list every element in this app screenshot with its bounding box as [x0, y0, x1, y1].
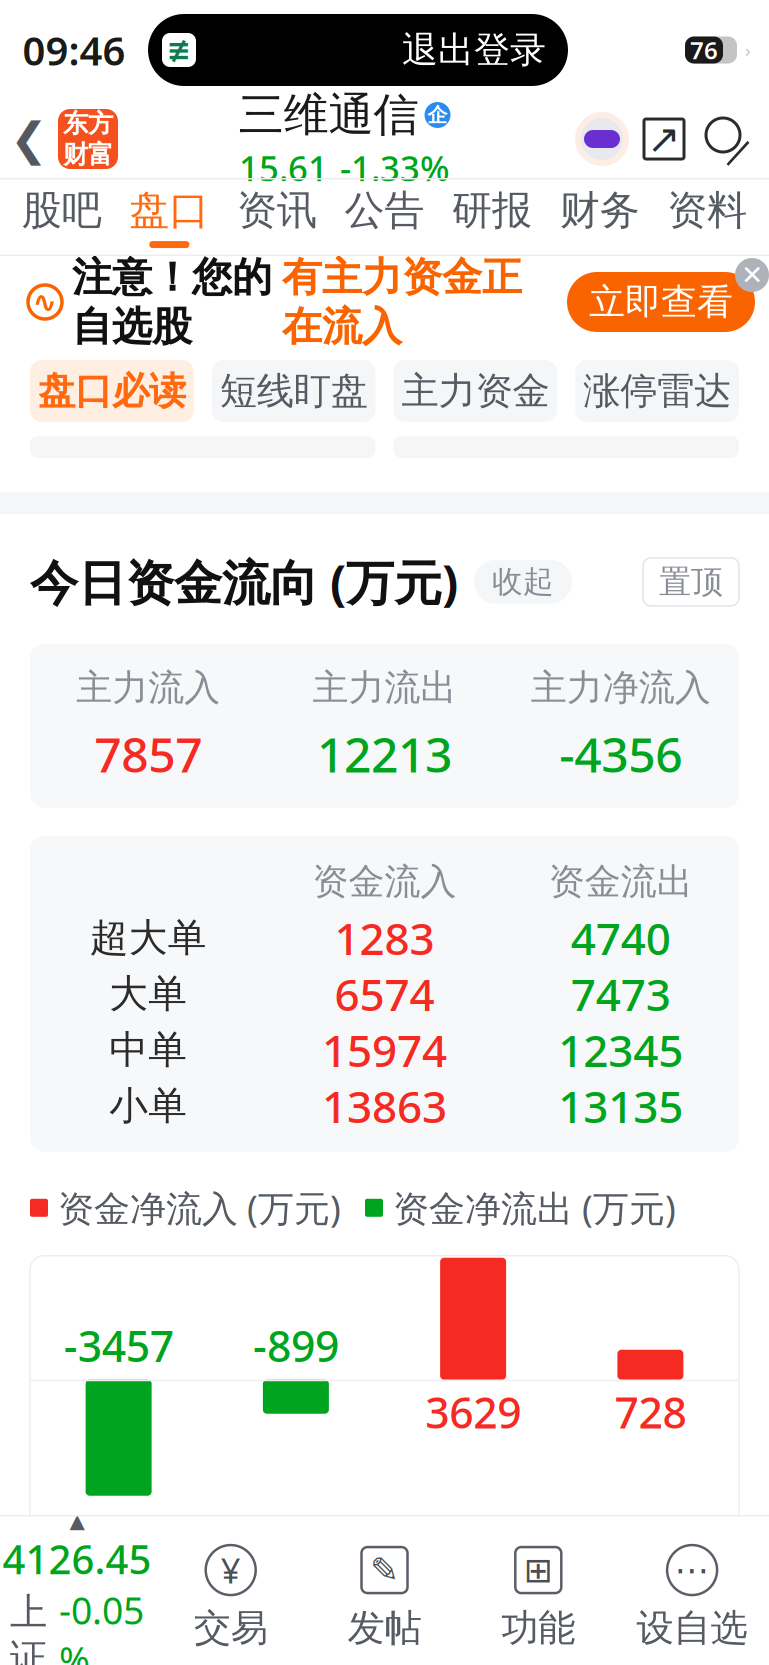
staticText: ❮ — [10, 113, 48, 165]
staticText: 今日资金流向 (万元) — [30, 550, 458, 614]
staticText: 有主力资金正在流入 — [282, 253, 522, 351]
staticText: 3629 — [425, 1384, 521, 1440]
staticText: 涨停雷达 — [583, 368, 731, 414]
button[interactable]: 资讯 — [223, 178, 331, 256]
staticText: 财富 — [63, 139, 113, 170]
staticText: 发帖 — [347, 1605, 421, 1651]
staticText: 中单 — [109, 1026, 187, 1074]
button[interactable]: 研报 — [438, 178, 546, 256]
staticText: ↗ — [647, 116, 681, 162]
staticText: 净超大 — [60, 1512, 177, 1559]
staticText: 资金流出 — [549, 860, 693, 904]
staticText: 09:46 — [22, 23, 125, 76]
button[interactable]: 搜索 — [695, 102, 759, 176]
staticText: 收起 — [492, 563, 554, 601]
staticText: 盘口必读 — [38, 368, 186, 414]
staticText: -1.33% — [340, 145, 450, 191]
staticText: ▲ — [69, 1509, 84, 1532]
staticText: 6574 — [334, 965, 434, 1023]
button[interactable]: ∿ — [0, 256, 769, 348]
staticText: -4356 — [559, 722, 682, 786]
staticText: 13135 — [558, 1077, 683, 1135]
staticText: 功能 — [501, 1605, 575, 1651]
staticText: 3629 — [425, 1229, 521, 1286]
button[interactable]: 分享 — [633, 102, 695, 176]
button[interactable]: 智能助手 — [571, 102, 633, 176]
button[interactable]: 主力资金 — [393, 360, 557, 422]
button[interactable]: ≢ — [148, 14, 568, 86]
button[interactable]: 置顶 — [643, 558, 739, 606]
staticText: 15.61 — [239, 145, 328, 191]
staticText: ⊞ — [524, 1550, 553, 1590]
staticText: 1283 — [334, 909, 434, 967]
staticText: 三维通信 — [238, 87, 418, 143]
button[interactable]: ¥ — [154, 1543, 308, 1651]
staticText: -3457 — [64, 1317, 174, 1374]
staticText: 12213 — [317, 722, 452, 786]
staticText: 4126.45 — [2, 1532, 151, 1585]
staticText: 超大单 — [90, 914, 207, 962]
staticText: 资金流入 — [312, 860, 456, 904]
staticText: 主力流出 — [312, 666, 456, 710]
button[interactable]: 关闭 — [735, 258, 769, 292]
staticText: 资讯 — [237, 186, 317, 235]
staticText: 净小单 — [592, 1512, 709, 1559]
staticText: 企 — [427, 103, 447, 127]
staticText: 728 — [614, 1384, 686, 1440]
button[interactable]: 涨停雷达 — [575, 360, 739, 422]
staticText: 7473 — [571, 965, 671, 1023]
staticText: 净大单 — [237, 1512, 354, 1559]
button[interactable]: ▲ — [0, 1509, 154, 1665]
staticText: 置顶 — [659, 562, 723, 601]
staticText: 4740 — [571, 909, 671, 967]
button[interactable]: ⋯ — [615, 1543, 769, 1651]
staticText: 13863 — [322, 1077, 447, 1135]
button[interactable]: 短线盯盘 — [212, 360, 376, 422]
staticText: 注意！您的自选股 — [72, 253, 272, 351]
staticText: 资料 — [667, 186, 747, 235]
button[interactable]: 盘口 — [116, 178, 223, 256]
button[interactable]: 收起 — [474, 560, 572, 604]
button[interactable]: 东方财富 — [58, 109, 118, 169]
staticText: 短线盯盘 — [220, 368, 368, 414]
staticText: ⋯ — [675, 1550, 710, 1590]
staticText: 退出登录 — [402, 28, 546, 72]
staticText: › — [745, 38, 751, 62]
staticText: 盘口 — [129, 186, 209, 235]
staticText: 资金净流入 (万元) — [58, 1184, 341, 1232]
staticText: ∿ — [32, 285, 57, 319]
staticText: 公告 — [344, 186, 424, 235]
button[interactable]: 资料 — [653, 178, 761, 256]
button[interactable]: ⊞ — [461, 1543, 615, 1651]
staticText: 728 — [614, 1321, 686, 1378]
staticText: 上证 — [10, 1589, 47, 1665]
staticText: 7857 — [94, 722, 202, 786]
staticText: -0.05% — [59, 1585, 144, 1665]
staticText: ≢ — [166, 33, 191, 67]
staticText: ¥ — [221, 1547, 241, 1593]
button[interactable]: 财务 — [546, 178, 653, 256]
staticText: ／ — [725, 136, 752, 168]
staticText: 股吧 — [22, 186, 102, 235]
button[interactable]: 股吧 — [8, 178, 116, 256]
staticText: ✎ — [370, 1550, 399, 1590]
staticText: 净中单 — [415, 1512, 532, 1559]
staticText: 交易 — [194, 1605, 268, 1651]
button[interactable]: ✎ — [308, 1543, 461, 1651]
staticText: 东方 — [63, 108, 113, 139]
staticText: 研报 — [452, 186, 532, 235]
staticText: 主力资金 — [401, 368, 549, 414]
staticText: 设自选 — [637, 1605, 748, 1651]
staticText: 主力流入 — [76, 666, 220, 710]
staticText: 15974 — [322, 1021, 447, 1079]
staticText: 小单 — [109, 1082, 187, 1130]
staticText: 主力净流入 — [531, 666, 711, 710]
button[interactable]: 盘口必读 — [30, 360, 194, 422]
staticText: 大单 — [109, 970, 187, 1018]
button[interactable]: 公告 — [331, 178, 438, 256]
button[interactable]: 返回 — [0, 102, 58, 176]
staticText: 76 — [690, 34, 718, 66]
staticText: -899 — [253, 1317, 339, 1374]
staticText: 财务 — [560, 186, 640, 235]
staticText: ✕ — [741, 260, 763, 290]
